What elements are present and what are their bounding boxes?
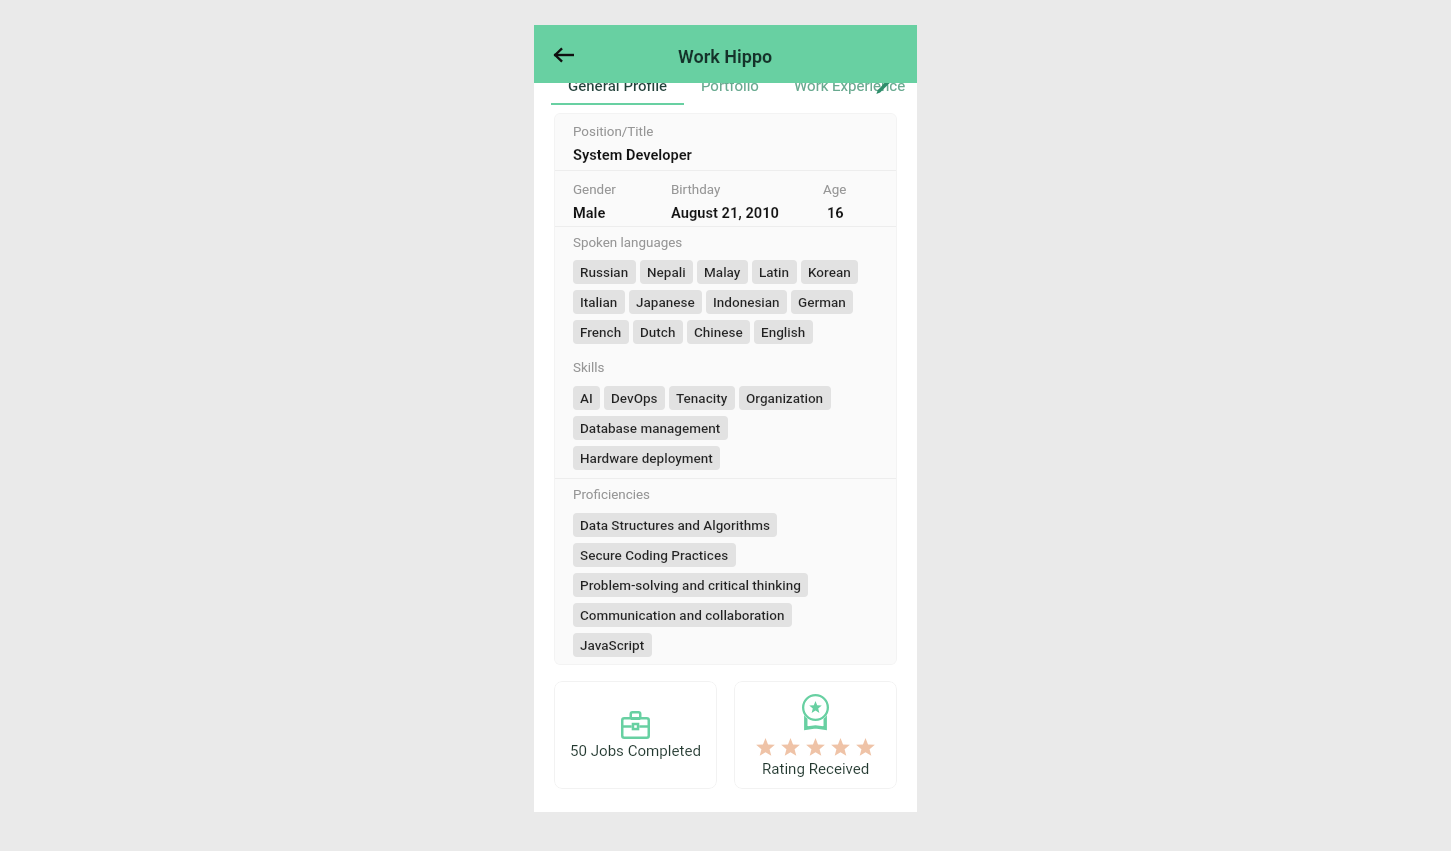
button[interactable]: Portfolio <box>684 77 775 105</box>
staticText: Skills <box>573 360 605 376</box>
staticText: August 21, 2010 <box>671 204 779 221</box>
button[interactable]: Hardware deployment <box>573 446 720 470</box>
button[interactable]: Italian <box>573 290 625 314</box>
staticText: Birthday <box>671 182 721 198</box>
button[interactable]: French <box>573 320 629 344</box>
staticText: Portfolio <box>701 77 759 95</box>
staticText: 16 <box>827 204 844 221</box>
staticText: DevOps <box>611 390 658 406</box>
staticText: Nepali <box>647 264 686 280</box>
staticText: 50 Jobs Completed <box>570 742 701 760</box>
staticText: General Profile <box>568 77 668 95</box>
button[interactable]: Tenacity <box>669 386 735 410</box>
button[interactable]: Problem-solving and critical thinking <box>573 573 808 597</box>
staticText: Japanese <box>636 294 695 310</box>
staticText: Secure Coding Practices <box>580 547 729 563</box>
button[interactable]: Indonesian <box>706 290 787 314</box>
button[interactable]: Nepali <box>640 260 693 284</box>
staticText: Organization <box>746 390 824 406</box>
staticText: Latin <box>759 264 790 280</box>
button[interactable]: Edit <box>875 78 892 95</box>
staticText: English <box>761 324 806 340</box>
staticText: Hardware deployment <box>580 450 713 466</box>
button[interactable]: Back <box>548 39 580 71</box>
staticText: Rating Received <box>762 760 870 778</box>
button[interactable]: Russian <box>573 260 636 284</box>
button[interactable]: Korean <box>801 260 858 284</box>
button[interactable]: Rating Received <box>734 681 897 789</box>
staticText: Malay <box>704 264 741 280</box>
staticText: AI <box>580 390 593 406</box>
button[interactable]: 50 Jobs Completed <box>554 681 717 789</box>
staticText: Work Hippo <box>678 46 773 67</box>
button[interactable]: Malay <box>697 260 748 284</box>
button[interactable]: Organization <box>739 386 831 410</box>
staticText: Korean <box>808 264 851 280</box>
staticText: Gender <box>573 182 616 198</box>
staticText: Italian <box>580 294 618 310</box>
staticText: Age <box>823 182 847 198</box>
button[interactable]: Chinese <box>687 320 750 344</box>
staticText: Chinese <box>694 324 743 340</box>
staticText: Work Experience <box>794 77 906 95</box>
staticText: Communication and collaboration <box>580 607 785 623</box>
staticText: Dutch <box>640 324 676 340</box>
button[interactable]: Secure Coding Practices <box>573 543 736 567</box>
staticText: System Developer <box>573 146 692 163</box>
button[interactable]: Data Structures and Algorithms <box>573 513 777 537</box>
button[interactable]: DevOps <box>604 386 665 410</box>
staticText: Position/Title <box>573 124 654 140</box>
staticText: Proficiencies <box>573 487 650 503</box>
button[interactable]: Database management <box>573 416 728 440</box>
button[interactable]: General Profile <box>551 77 684 105</box>
staticText: Spoken languages <box>573 235 683 251</box>
button[interactable]: Work Experience <box>775 77 925 105</box>
staticText: French <box>580 324 622 340</box>
button[interactable]: English <box>754 320 813 344</box>
staticText: Tenacity <box>676 390 728 406</box>
button[interactable]: Latin <box>752 260 797 284</box>
button[interactable]: AI <box>573 386 600 410</box>
button[interactable]: Dutch <box>633 320 683 344</box>
button[interactable]: German <box>791 290 853 314</box>
staticText: Male <box>573 204 606 221</box>
button[interactable]: Japanese <box>629 290 702 314</box>
button[interactable]: Communication and collaboration <box>573 603 792 627</box>
staticText: JavaScript <box>580 637 645 653</box>
staticText: Data Structures and Algorithms <box>580 517 770 533</box>
staticText: Problem-solving and critical thinking <box>580 577 801 593</box>
button[interactable]: JavaScript <box>573 633 652 657</box>
staticText: German <box>798 294 846 310</box>
staticText: Database management <box>580 420 721 436</box>
staticText: Russian <box>580 264 629 280</box>
staticText: Indonesian <box>713 294 780 310</box>
